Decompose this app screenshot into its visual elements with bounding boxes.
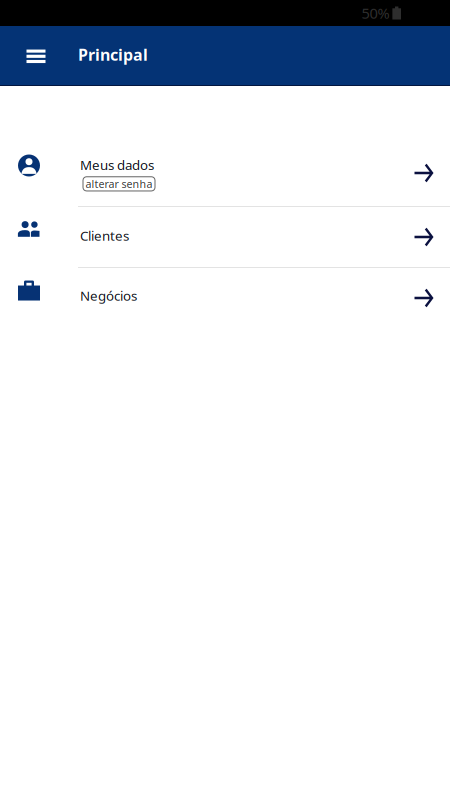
staticText: Negócios — [80, 287, 137, 304]
staticText: Meus dados — [80, 156, 154, 174]
staticText: Clientes — [80, 227, 129, 244]
staticText: 50% — [361, 3, 389, 23]
staticText: Principal — [78, 44, 148, 65]
button[interactable]: Menu — [19, 38, 53, 72]
button[interactable]: Negócios — [0, 268, 450, 329]
staticText: alterar senha — [85, 177, 152, 191]
button[interactable]: Clientes — [0, 207, 450, 268]
button[interactable]: Meus dados — [0, 131, 450, 207]
